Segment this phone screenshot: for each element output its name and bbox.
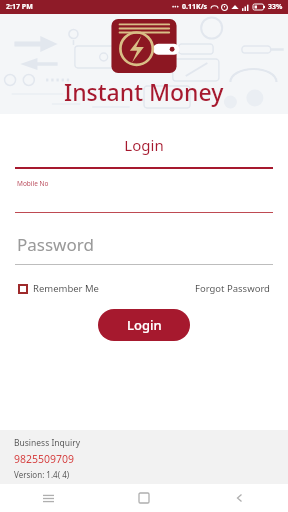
staticText: Business Inquiry — [14, 437, 81, 449]
button[interactable]: 9825509709 — [14, 452, 75, 466]
staticText: Mobile No — [17, 179, 49, 188]
staticText: 33% — [268, 2, 283, 12]
staticText: Remember Me — [33, 282, 99, 295]
button[interactable]: Recent apps — [0, 484, 96, 512]
staticText: Password — [17, 233, 94, 256]
staticText: 2:17 PM — [6, 2, 33, 12]
button[interactable]: Remember Me — [18, 282, 99, 295]
staticText: Version: 1.4( 4) — [14, 469, 70, 480]
staticText: 0.11K/s — [182, 2, 208, 12]
button[interactable]: Home — [96, 484, 192, 512]
staticText: Instant Money — [64, 76, 224, 107]
button[interactable]: Forgot Password — [195, 282, 270, 295]
button[interactable]: Login — [98, 309, 190, 341]
staticText: Login — [127, 316, 162, 334]
button[interactable]: Back — [192, 484, 288, 512]
staticText: ••• — [172, 3, 179, 11]
staticText: Login — [0, 135, 288, 155]
